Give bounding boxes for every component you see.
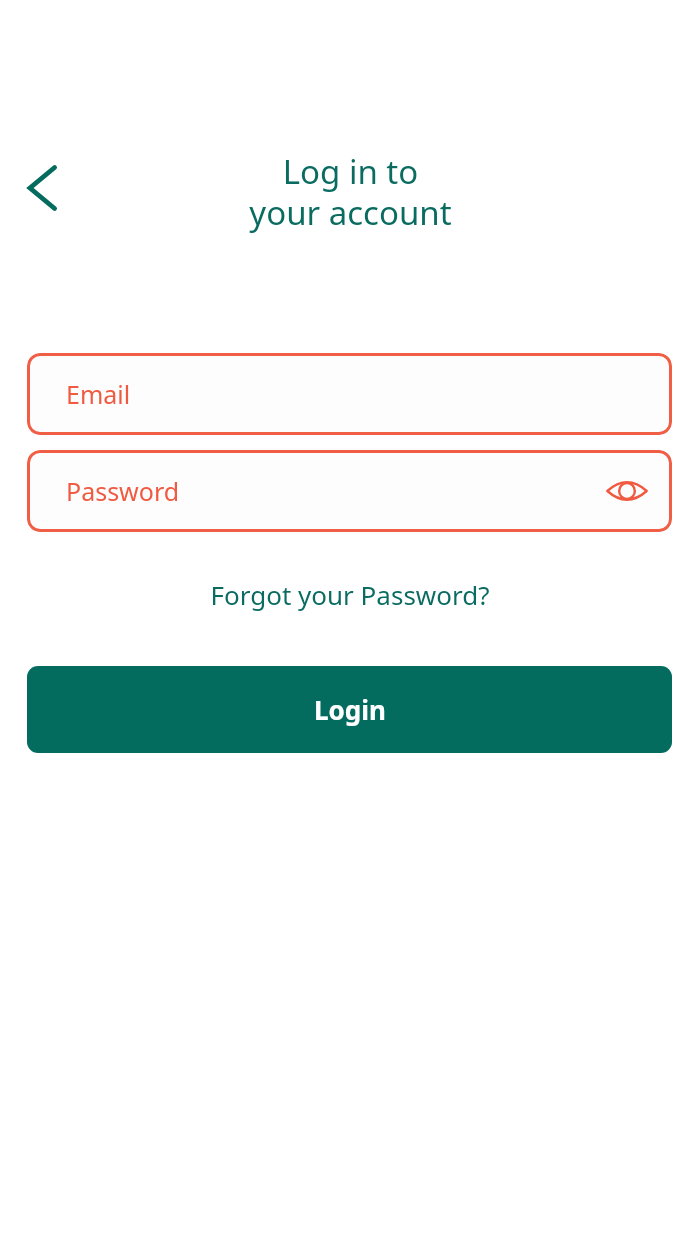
staticText: Password	[66, 474, 180, 508]
staticText: Login	[314, 692, 386, 727]
button[interactable]: Email	[27, 353, 672, 435]
button[interactable]: Back	[0, 146, 84, 230]
staticText: Log in to your account	[249, 149, 452, 235]
button[interactable]: Show password	[599, 463, 655, 519]
staticText: Email	[66, 377, 131, 411]
button[interactable]: Password	[27, 450, 672, 532]
button[interactable]: Login	[27, 666, 672, 753]
staticText: Forgot your Password?	[210, 577, 490, 612]
button[interactable]: Forgot your Password?	[179, 568, 521, 620]
